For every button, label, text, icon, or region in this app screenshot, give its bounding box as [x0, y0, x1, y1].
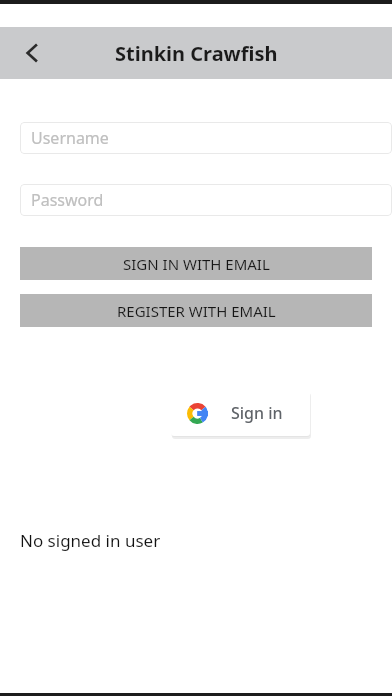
button[interactable]: Back [9, 30, 55, 76]
button[interactable]: REGISTER WITH EMAIL [20, 294, 372, 327]
button[interactable]: Password [20, 184, 392, 216]
staticText: SIGN IN WITH EMAIL [123, 254, 270, 274]
button[interactable]: Username [20, 122, 392, 154]
staticText: REGISTER WITH EMAIL [117, 301, 276, 321]
staticText: Sign in [231, 402, 283, 424]
button[interactable]: SIGN IN WITH EMAIL [20, 247, 372, 280]
staticText: No signed in user [20, 529, 161, 552]
staticText: Stinkin Crawfish [115, 40, 278, 67]
staticText: Username [31, 127, 109, 149]
button[interactable]: Sign in [171, 390, 310, 436]
staticText: Password [31, 189, 104, 211]
